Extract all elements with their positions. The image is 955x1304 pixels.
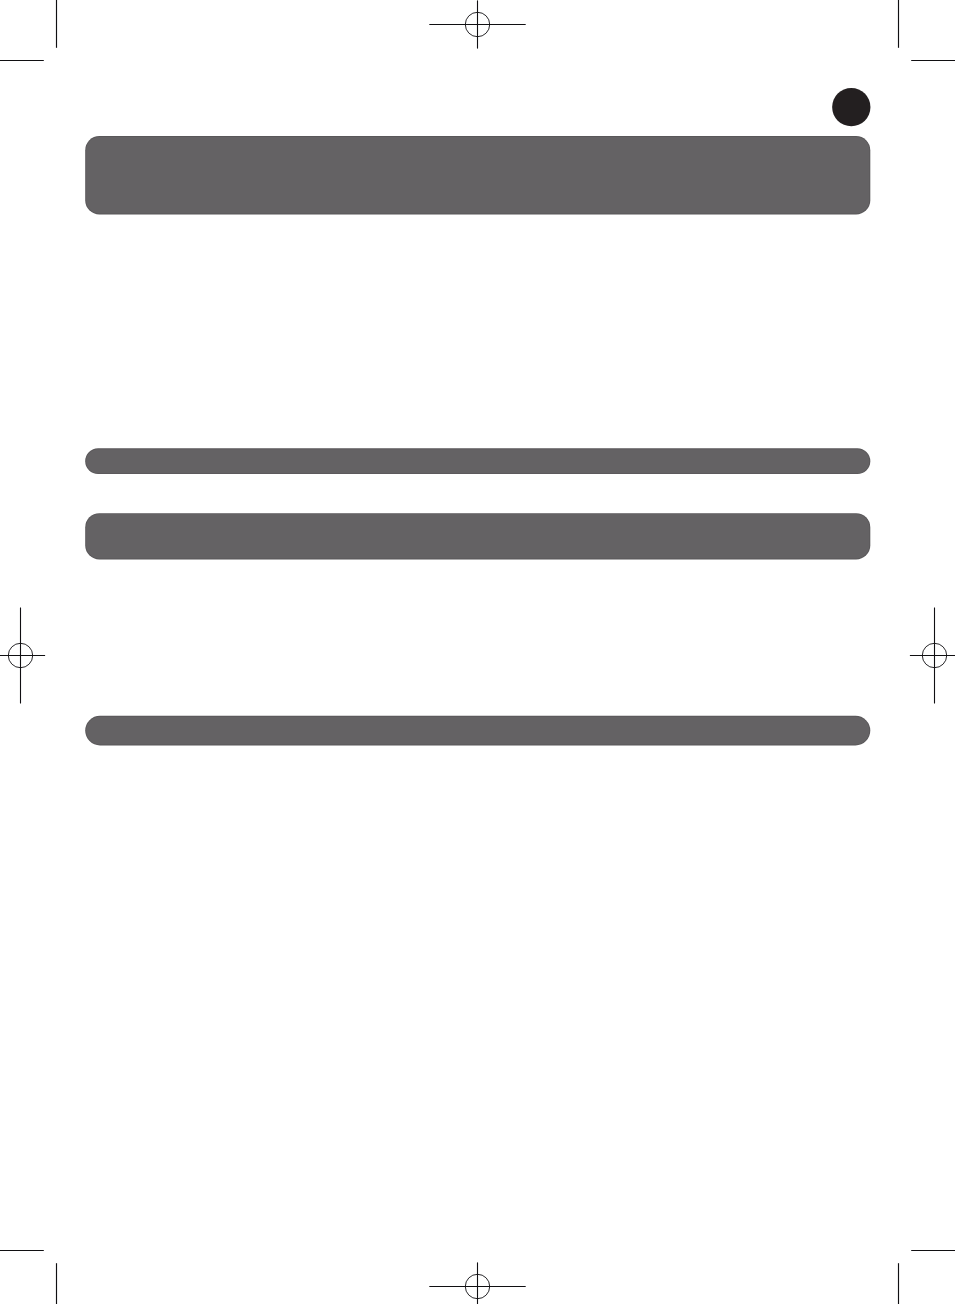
button[interactable]: Headline text block <box>85 136 870 214</box>
button[interactable]: Rule <box>85 448 870 474</box>
button[interactable]: Sub-head text block <box>85 513 870 559</box>
button[interactable]: Caption rule <box>85 716 870 746</box>
button[interactable]: Process black colour dot <box>832 88 870 126</box>
